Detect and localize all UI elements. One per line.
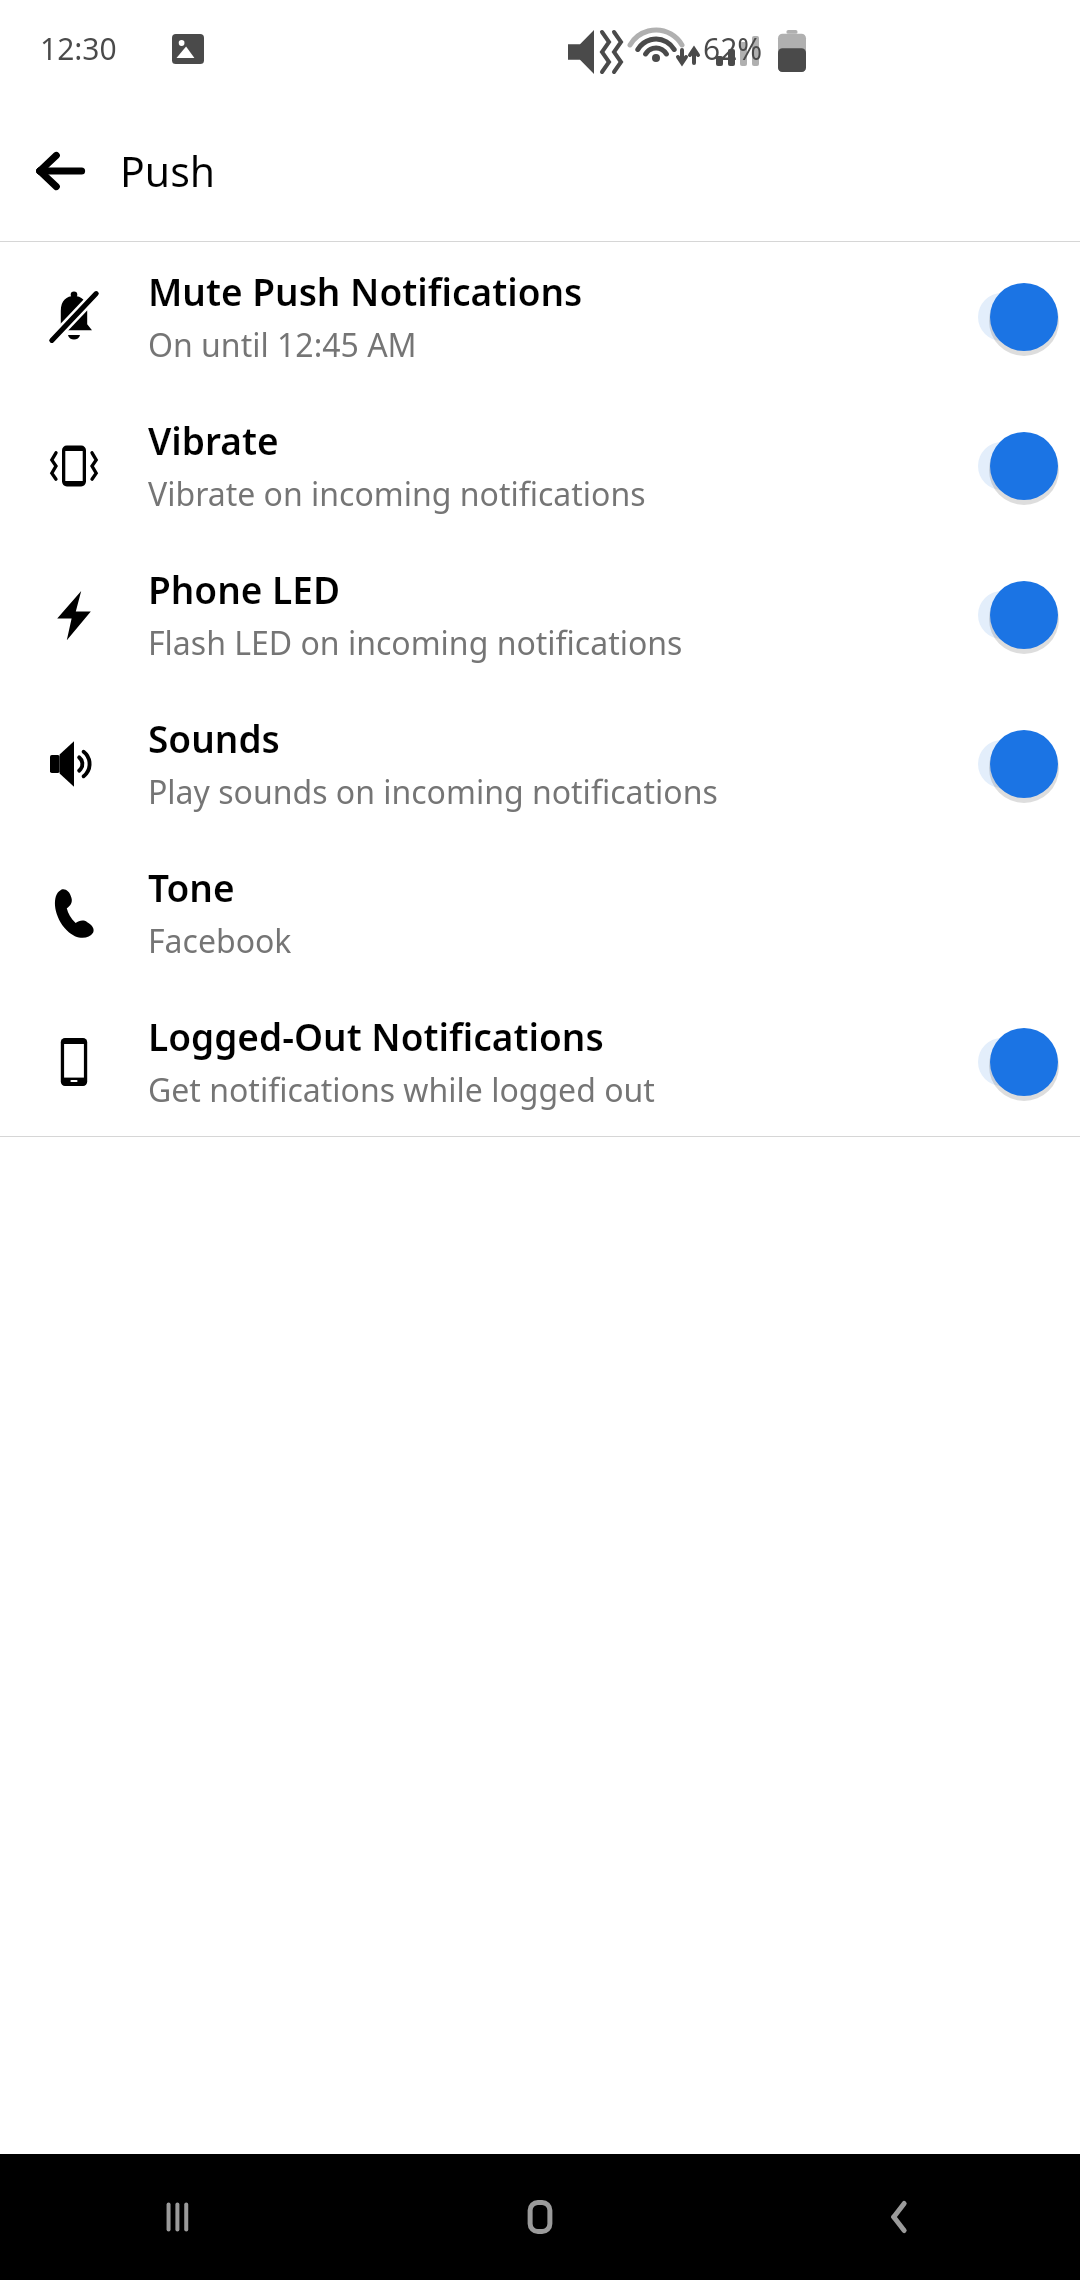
button[interactable]: Vibrate bbox=[0, 391, 1080, 540]
button[interactable]: Back bbox=[20, 131, 100, 211]
button[interactable]: Recent apps bbox=[0, 2154, 360, 2280]
button[interactable]: Toggle bbox=[960, 1027, 1070, 1097]
button[interactable]: Logged-out notifications bbox=[0, 987, 1080, 1136]
staticText: Phone LED bbox=[148, 564, 340, 614]
other: Logged-out notifications bbox=[44, 1032, 104, 1092]
button[interactable]: Toggle bbox=[960, 431, 1070, 501]
button[interactable]: Toggle bbox=[960, 282, 1070, 352]
staticText: Flash LED on incoming notifications bbox=[148, 621, 683, 665]
other: Vibrate bbox=[44, 436, 104, 496]
button[interactable]: Back bbox=[720, 2154, 1080, 2280]
other: Mute push notifications bbox=[44, 287, 104, 347]
staticText: On until 12:45 AM bbox=[148, 323, 417, 367]
button[interactable]: Tone bbox=[0, 838, 1080, 987]
other: Tone bbox=[44, 883, 104, 943]
button[interactable]: Toggle bbox=[960, 580, 1070, 650]
staticText: Tone bbox=[148, 862, 235, 912]
staticText: Play sounds on incoming notifications bbox=[148, 770, 718, 814]
button[interactable]: Mute push notifications bbox=[0, 242, 1080, 391]
other: Phone LED bbox=[44, 585, 104, 645]
staticText: Push bbox=[120, 143, 216, 199]
staticText: Mute Push Notifications bbox=[148, 266, 583, 316]
staticText: 62% bbox=[703, 28, 763, 69]
button[interactable]: Toggle bbox=[960, 729, 1070, 799]
staticText: Facebook bbox=[148, 919, 292, 963]
staticText: Logged-Out Notifications bbox=[148, 1011, 604, 1061]
button[interactable]: Home bbox=[360, 2154, 720, 2280]
staticText: Vibrate on incoming notifications bbox=[148, 472, 646, 516]
staticText: Sounds bbox=[148, 713, 280, 763]
button[interactable]: Phone LED bbox=[0, 540, 1080, 689]
other: Sounds bbox=[44, 734, 104, 794]
staticText: 12:30 bbox=[40, 28, 117, 69]
button[interactable]: Sounds bbox=[0, 689, 1080, 838]
staticText: Vibrate bbox=[148, 415, 279, 465]
staticText: Get notifications while logged out bbox=[148, 1068, 655, 1112]
